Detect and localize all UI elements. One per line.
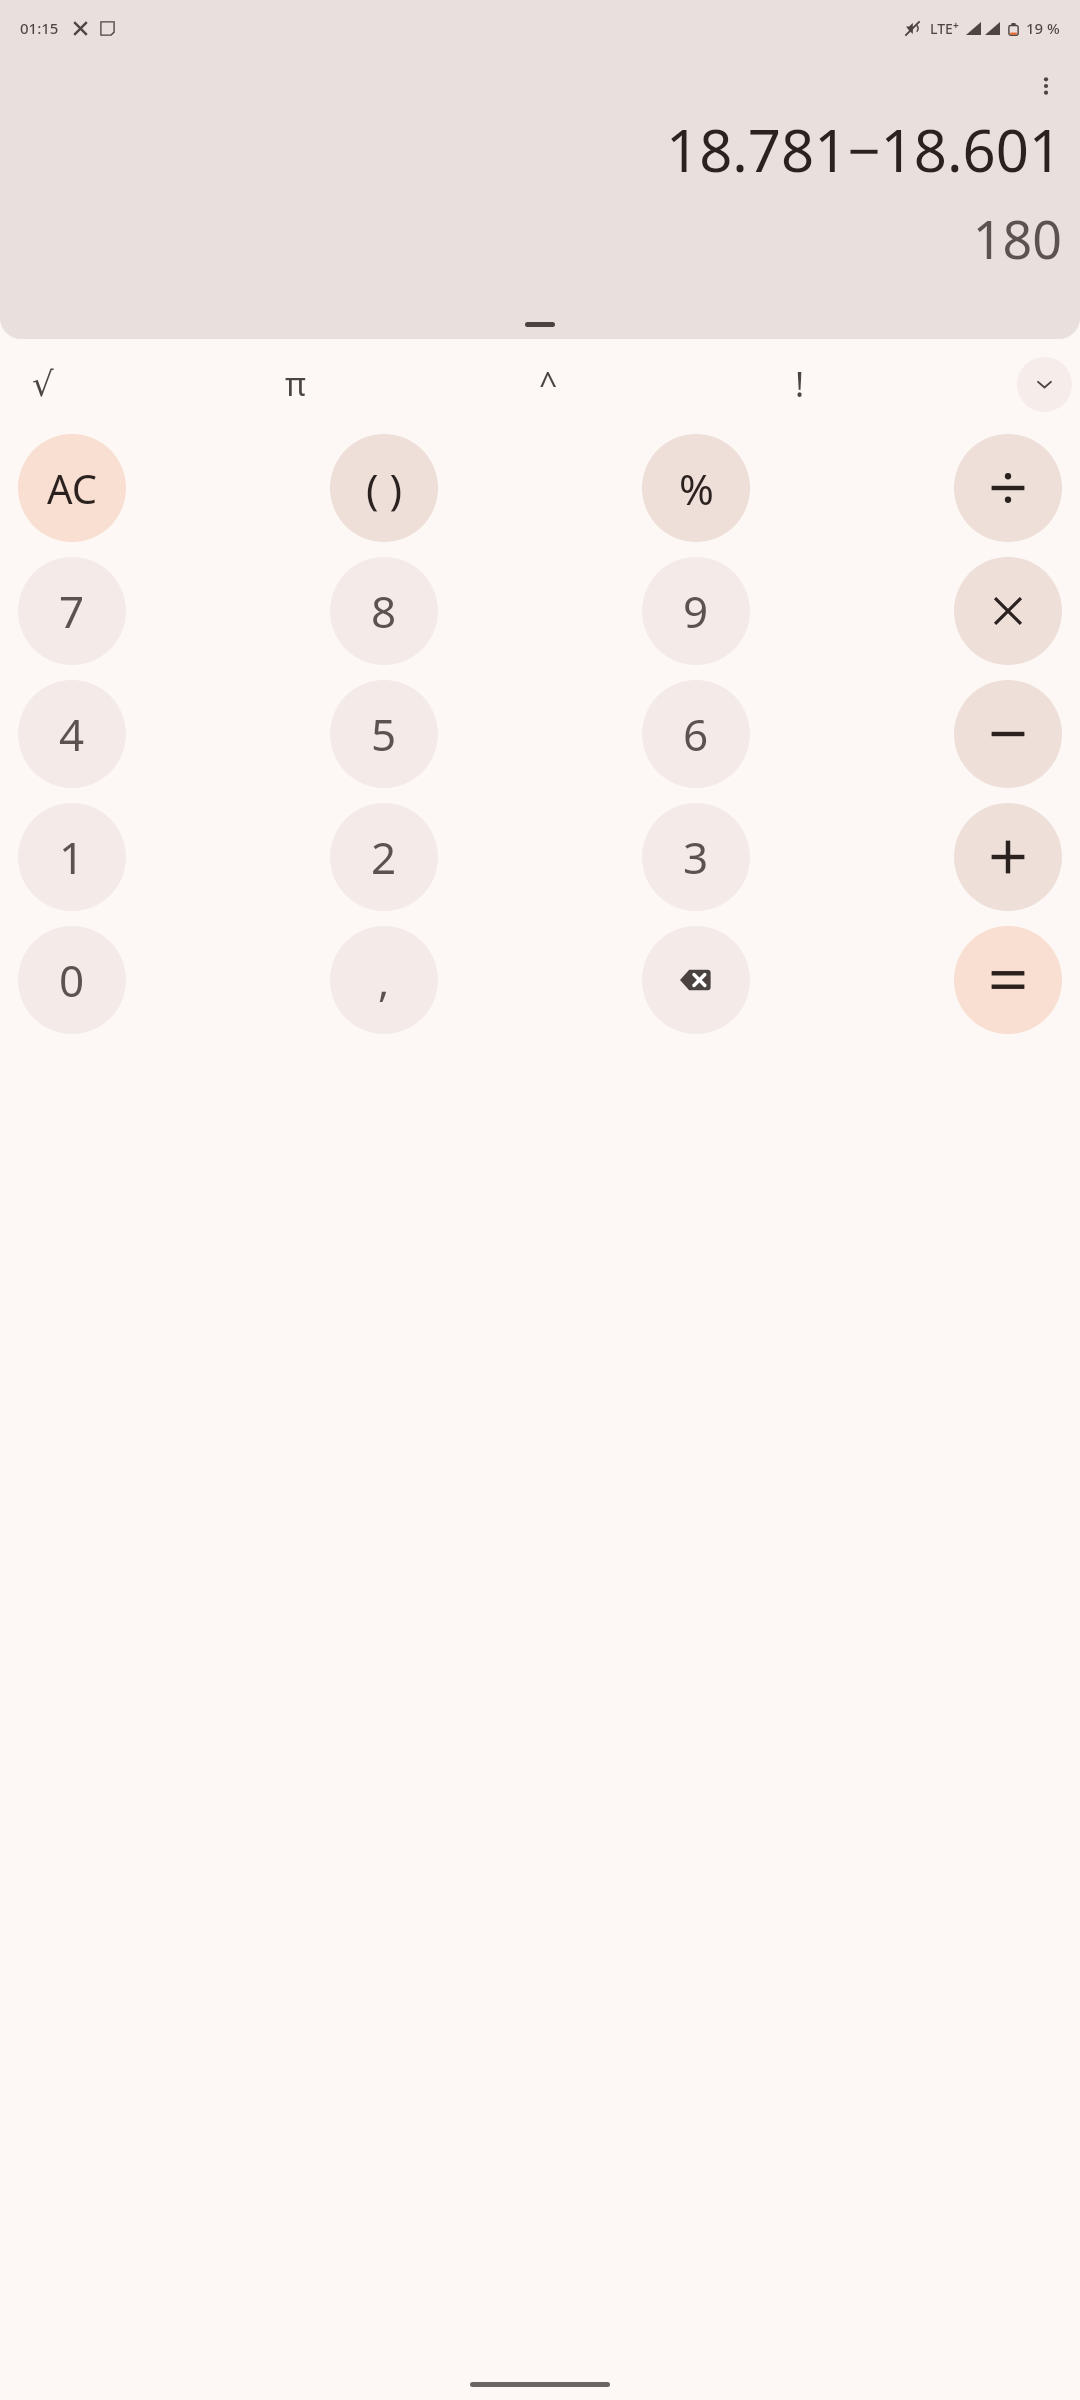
staticText: 5 [371,704,397,764]
staticText: 4 [59,704,85,764]
staticText: √ [32,364,54,404]
staticText: ! [795,361,805,407]
button[interactable]: π [260,355,330,413]
staticText: π [285,362,306,406]
staticText: 9 [683,581,709,641]
button[interactable]: , [330,926,438,1034]
button[interactable]: AC [18,434,126,542]
staticText: 2 [371,827,397,887]
button[interactable]: 7 [18,557,126,665]
staticText: ( ) [366,460,403,517]
button[interactable]: % [642,434,750,542]
staticText: 8 [371,581,397,641]
button[interactable]: Equals [954,926,1062,1034]
button[interactable]: Plus [954,803,1062,911]
button[interactable]: √ [8,355,78,413]
staticText: + [953,18,959,32]
button[interactable]: ( ) [330,434,438,542]
staticText: 6 [683,704,709,764]
button[interactable] [954,434,1062,542]
button[interactable]: Collapse [1017,357,1072,412]
button[interactable]: 5 [330,680,438,788]
staticText: 01:15 [20,18,59,38]
staticText: 180 [972,203,1062,274]
button[interactable]: Multiply [954,557,1062,665]
button[interactable]: 3 [642,803,750,911]
staticText: 18.781−18.601 [665,110,1062,189]
button[interactable]: 4 [18,680,126,788]
staticText: 19 % [1026,18,1060,38]
button[interactable]: 9 [642,557,750,665]
staticText: 0 [59,950,85,1010]
staticText: LTE [930,19,953,38]
button[interactable]: More options [1022,62,1070,110]
button[interactable]: 6 [642,680,750,788]
button[interactable]: 0 [18,926,126,1034]
staticText: 7 [59,581,85,641]
staticText: , [378,952,390,1009]
staticText: ^ [539,362,558,406]
staticText: % [679,460,714,517]
button[interactable]: ! [765,355,835,413]
staticText: AC [47,461,98,515]
button[interactable]: Backspace [642,926,750,1034]
button[interactable]: Minus [954,680,1062,788]
staticText: 1 [59,827,85,887]
button[interactable]: 2 [330,803,438,911]
button[interactable]: 8 [330,557,438,665]
staticText: 3 [683,827,709,887]
button[interactable]: ^ [513,355,583,413]
button[interactable]: 1 [18,803,126,911]
